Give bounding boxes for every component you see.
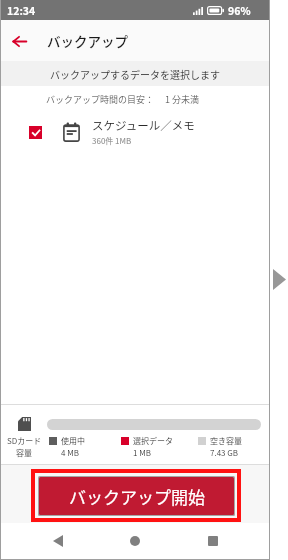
staticText: SDカード (7, 435, 42, 447)
staticText: バックアップ (47, 31, 128, 51)
button[interactable]: バックアップ開始 (39, 477, 234, 515)
button[interactable]: Back (43, 526, 73, 556)
staticText: 容量 (16, 447, 32, 459)
staticText: 4 MB (61, 447, 79, 459)
staticText: 96% (228, 3, 251, 18)
staticText: 1 MB (133, 447, 151, 459)
staticText: 360件 1MB (92, 135, 132, 147)
staticText: バックアップ時間の目安： (46, 93, 155, 106)
staticText: 選択データ (133, 435, 173, 447)
button[interactable]: 戻る (1, 23, 37, 59)
button[interactable]: スケジュール／メモ (1, 115, 269, 149)
staticText: バックアップ開始 (69, 484, 205, 509)
staticText: 空き容量 (210, 435, 242, 447)
staticText: 12:34 (7, 3, 36, 18)
button[interactable]: Home (120, 526, 150, 556)
staticText: バックアップするデータを選択します (50, 67, 220, 81)
staticText: 7.43 GB (210, 447, 239, 459)
staticText: スケジュール／メモ (92, 117, 195, 134)
button[interactable]: Recents (198, 526, 228, 556)
staticText: 使用中 (61, 435, 85, 447)
staticText: 1 分未満 (165, 93, 200, 106)
